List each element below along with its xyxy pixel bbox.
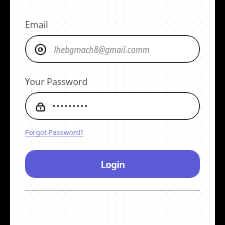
button[interactable]: Email [25, 35, 200, 63]
other: Email [35, 44, 46, 55]
staticText: Login [101, 158, 125, 170]
other: Password [35, 101, 46, 112]
staticText: lhebgmach8@gmail.comm [54, 44, 150, 55]
button[interactable]: Password [25, 92, 200, 120]
button[interactable]: Forgot Password? [25, 128, 84, 138]
staticText: Email [25, 18, 49, 30]
button[interactable]: Login [25, 150, 200, 178]
staticText: Your Password [25, 75, 88, 87]
staticText: Forgot Password? [25, 128, 84, 138]
